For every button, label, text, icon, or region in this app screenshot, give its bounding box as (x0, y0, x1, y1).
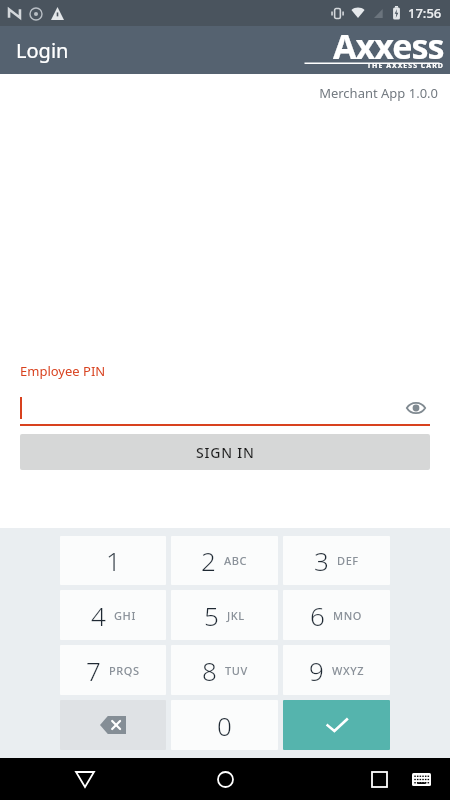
button[interactable]: Confirm (283, 700, 390, 750)
staticText: 2 (201, 543, 216, 578)
staticText: Axxess (333, 23, 444, 67)
staticText: 3 (314, 543, 329, 578)
staticText: 9 (309, 653, 324, 688)
button[interactable]: 9 (283, 645, 390, 695)
staticText: THE AXXESS CARD (367, 61, 444, 71)
staticText: PRQS (109, 663, 140, 678)
button[interactable]: 5 (171, 590, 278, 640)
staticText: 6 (310, 598, 325, 633)
button[interactable]: Home (208, 762, 242, 796)
staticText: Employee PIN (20, 362, 106, 380)
button[interactable]: Show PIN (402, 394, 430, 422)
button[interactable]: Backspace (60, 700, 166, 750)
staticText: WXYZ (332, 663, 365, 678)
button[interactable]: 4 (60, 590, 166, 640)
staticText: 1 (106, 543, 121, 578)
button[interactable]: Back (68, 762, 102, 796)
button[interactable]: 6 (283, 590, 390, 640)
button[interactable]: 0 (171, 700, 278, 750)
staticText: 4 (91, 598, 106, 633)
staticText: JKL (227, 608, 245, 623)
button[interactable]: Show PIN (20, 392, 430, 424)
staticText: 8 (202, 653, 217, 688)
staticText: 7 (86, 653, 101, 688)
staticText: 17:56 (408, 4, 442, 22)
staticText: ABC (224, 553, 248, 568)
staticText: 0 (217, 708, 232, 743)
button[interactable]: 1 (60, 536, 166, 585)
button[interactable]: Recents (362, 762, 396, 796)
staticText: 5 (204, 598, 219, 633)
staticText: DEF (337, 553, 359, 568)
staticText: Login (16, 37, 69, 64)
staticText: TUV (225, 663, 248, 678)
staticText: MNO (333, 608, 363, 623)
staticText: GHI (114, 608, 136, 623)
staticText: Merchant App 1.0.0 (0, 84, 438, 102)
button[interactable]: 2 (171, 536, 278, 585)
button[interactable]: 8 (171, 645, 278, 695)
button[interactable]: 3 (283, 536, 390, 585)
staticText: SIGN IN (196, 443, 255, 462)
button[interactable]: SIGN IN (20, 434, 430, 470)
button[interactable]: Keyboard (406, 764, 436, 794)
button[interactable]: 7 (60, 645, 166, 695)
